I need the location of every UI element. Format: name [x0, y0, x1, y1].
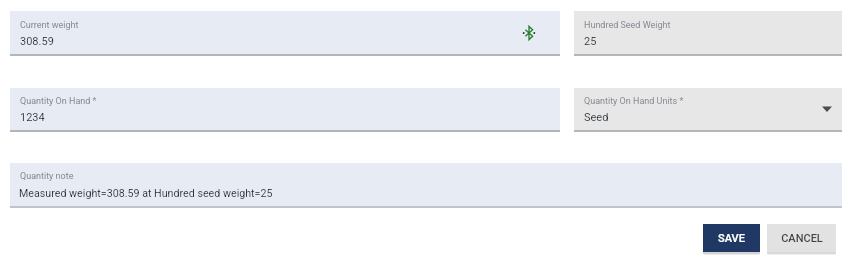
button[interactable]: Quantity On Hand Units * [574, 88, 842, 132]
staticText: Quantity On Hand Units * [584, 96, 684, 107]
staticText: 1234 [20, 111, 45, 124]
button[interactable]: CANCEL [767, 224, 836, 252]
staticText: Current weight [20, 20, 79, 31]
button[interactable]: Quantity note [10, 163, 842, 208]
button[interactable]: Hundred Seed Weight [574, 11, 842, 56]
staticText: Seed [584, 111, 609, 124]
staticText: Quantity On Hand * [20, 96, 97, 107]
button[interactable]: Bluetooth connected [518, 22, 540, 44]
button[interactable]: Current weight [10, 11, 560, 56]
staticText: 308.59 [20, 35, 54, 48]
button[interactable]: SAVE [703, 224, 760, 252]
staticText: SAVE [718, 232, 745, 245]
staticText: Measured weight=308.59 at Hundred seed w… [19, 187, 273, 200]
button[interactable]: Quantity On Hand * [10, 88, 560, 132]
staticText: Hundred Seed Weight [584, 20, 671, 31]
staticText: CANCEL [781, 232, 823, 245]
button[interactable]: Open dropdown [819, 101, 835, 117]
staticText: Quantity note [20, 171, 74, 182]
staticText: 25 [584, 35, 597, 48]
